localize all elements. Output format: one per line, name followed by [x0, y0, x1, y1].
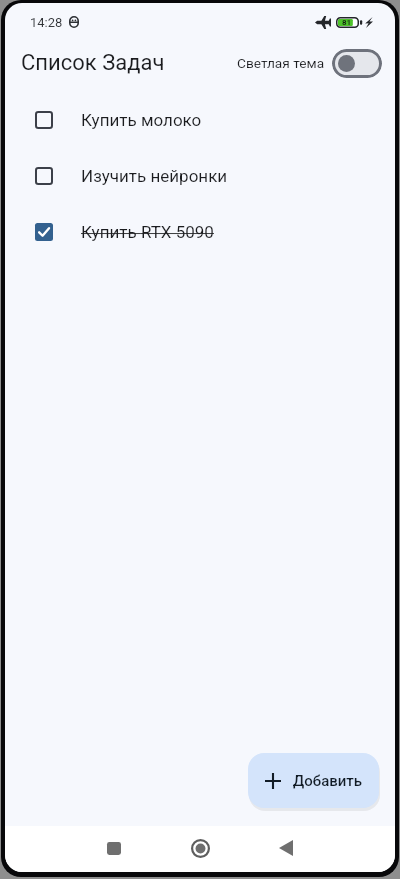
- button[interactable]: Добавить: [248, 753, 379, 808]
- staticText: Купить RTX 5090: [81, 222, 214, 242]
- staticText: Купить молоко: [81, 110, 202, 130]
- button[interactable]: Home: [177, 825, 223, 871]
- button[interactable]: Отметить невыполненной: [35, 223, 53, 241]
- button[interactable]: Back: [263, 825, 309, 871]
- button[interactable]: Отметить выполненной: [35, 111, 53, 129]
- button[interactable]: Отметить невыполненной: [5, 204, 395, 260]
- staticText: 81: [342, 18, 352, 27]
- staticText: Светлая тема: [237, 55, 325, 71]
- staticText: Добавить: [293, 772, 363, 790]
- staticText: Список Задач: [21, 50, 165, 76]
- button[interactable]: Отметить выполненной: [5, 92, 395, 148]
- button[interactable]: Светлая тема: [332, 49, 382, 78]
- button[interactable]: Отметить выполненной: [5, 148, 395, 204]
- staticText: Изучить нейронки: [81, 166, 228, 186]
- button[interactable]: Recent apps: [91, 825, 137, 871]
- staticText: 14:28: [30, 15, 63, 30]
- button[interactable]: Отметить выполненной: [35, 167, 53, 185]
